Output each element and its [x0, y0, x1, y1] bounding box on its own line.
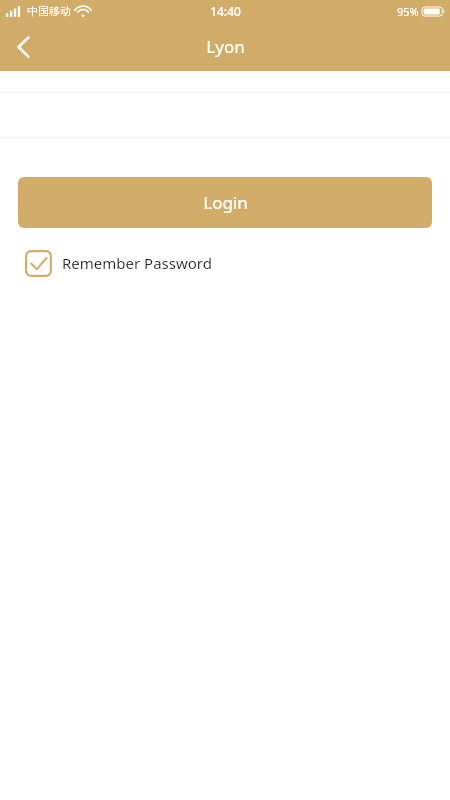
staticText: 14:40 — [210, 3, 241, 19]
button[interactable]: Back — [0, 22, 46, 71]
staticText: Login — [203, 191, 248, 214]
staticText: 95% — [397, 4, 419, 19]
button[interactable]: Login — [18, 177, 432, 228]
button[interactable]: Remember Password — [25, 249, 212, 277]
staticText: Lyon — [206, 35, 245, 58]
staticText: 中国移动 — [27, 4, 71, 18]
staticText: Remember Password — [62, 253, 212, 273]
